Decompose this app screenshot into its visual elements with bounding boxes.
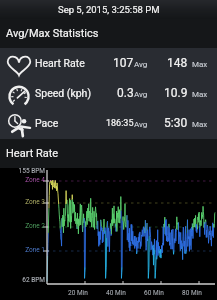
staticText: Zone 4 (0, 176, 45, 184)
staticText: Zone 2 (0, 222, 45, 230)
staticText: Heart Rate (35, 57, 85, 69)
staticText: Avg (134, 90, 148, 99)
staticText: Pace (35, 117, 59, 129)
staticText: Avg (134, 60, 148, 69)
staticText: 62 BPM (0, 276, 45, 284)
staticText: 5:30 (164, 116, 188, 130)
staticText: Zone 3 (0, 198, 45, 206)
staticText: Zone 1 (0, 246, 45, 254)
staticText: 148 (167, 56, 188, 70)
button[interactable]: Pace (0, 108, 217, 138)
staticText: 0.3 (117, 86, 134, 100)
staticText: 10.9 (164, 86, 188, 100)
staticText: Heart Rate (6, 147, 59, 160)
button[interactable]: Sep 5, 2015, 3:25:58 PM (0, 0, 217, 19)
staticText: Max (192, 60, 208, 69)
staticText: 60 Min (144, 289, 164, 297)
staticText: 20 Min (68, 289, 88, 297)
staticText: 40 Min (106, 289, 126, 297)
staticText: 155 BPM (0, 167, 45, 175)
staticText: Speed (kph) (35, 87, 92, 99)
staticText: 186:35 (106, 118, 134, 129)
staticText: 107 (113, 56, 134, 70)
other: Heart rate (7, 53, 31, 77)
staticText: Max (192, 90, 208, 99)
staticText: Avg/Max Statistics (6, 27, 99, 40)
other: Speed (7, 83, 31, 107)
button[interactable]: Heart rate (0, 48, 217, 78)
staticText: Avg (134, 120, 148, 129)
staticText: 80 Min (182, 289, 202, 297)
other: Pace (7, 113, 31, 137)
staticText: Sep 5, 2015, 3:25:58 PM (58, 4, 160, 15)
staticText: Max (192, 120, 208, 129)
button[interactable]: Speed (0, 78, 217, 108)
